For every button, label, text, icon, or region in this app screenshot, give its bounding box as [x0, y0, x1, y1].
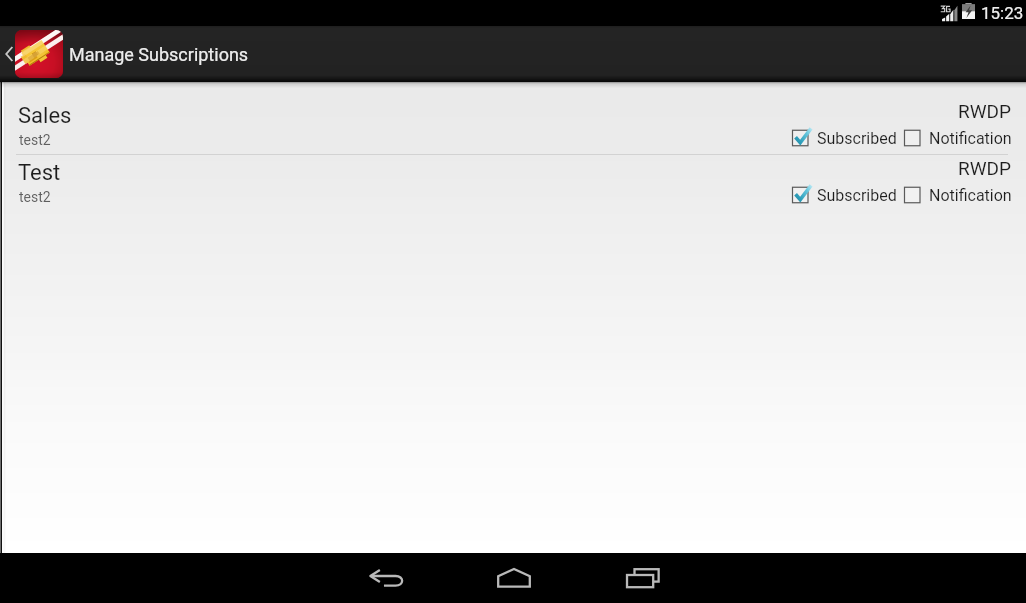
button[interactable]: Navigate up	[0, 26, 1026, 82]
button[interactable]: Sales	[0, 97, 1026, 154]
button[interactable]: Subscribed	[792, 128, 897, 148]
staticText: Subscribed	[817, 186, 897, 205]
button[interactable]: Test	[0, 154, 1026, 211]
button[interactable]: Home	[482, 553, 546, 603]
button[interactable]: Recent apps	[611, 553, 675, 603]
button[interactable]: Notification	[904, 185, 1012, 205]
staticText: Notification	[929, 129, 1012, 148]
staticText: test2	[19, 189, 51, 205]
staticText: Subscribed	[817, 129, 897, 148]
staticText: Manage Subscriptions	[69, 44, 249, 65]
staticText: RWDP	[958, 100, 1012, 122]
staticText: 15:23	[981, 3, 1024, 23]
staticText: test2	[19, 132, 51, 148]
staticText: RWDP	[958, 157, 1012, 179]
button[interactable]: Notification	[904, 128, 1012, 148]
staticText: Sales	[18, 103, 72, 129]
staticText: Notification	[929, 186, 1012, 205]
button[interactable]: Back	[354, 553, 418, 603]
button[interactable]: Subscribed	[792, 185, 897, 205]
staticText: Test	[18, 160, 61, 186]
